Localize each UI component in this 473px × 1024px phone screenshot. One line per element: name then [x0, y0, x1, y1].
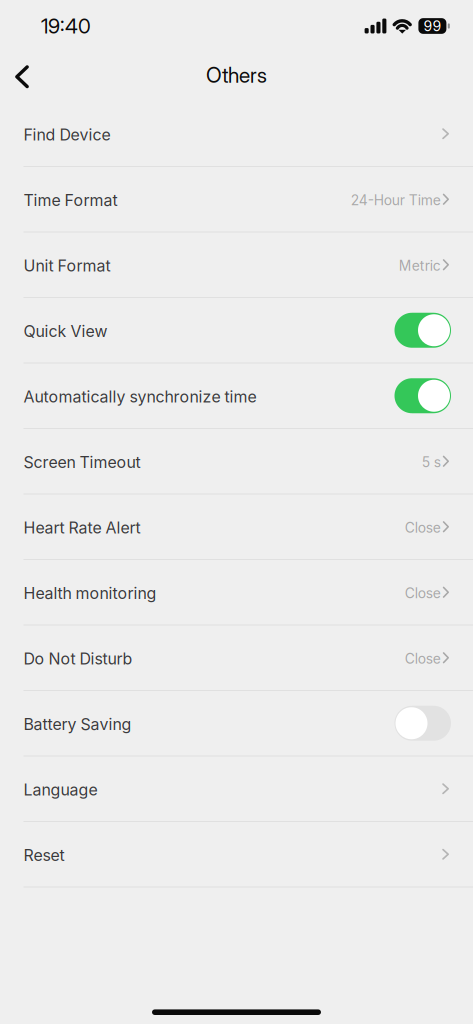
staticText: Unit Format: [23, 256, 110, 275]
staticText: Others: [206, 63, 267, 88]
button[interactable]: Battery Saving: [0, 691, 473, 756]
staticText: 19:40: [41, 13, 91, 38]
button[interactable]: Quick View: [0, 298, 473, 363]
staticText: 5 s: [422, 454, 441, 471]
staticText: Find Device: [23, 125, 110, 144]
staticText: Heart Rate Alert: [23, 518, 140, 537]
staticText: Close: [405, 585, 441, 602]
button[interactable]: Find Device: [0, 101, 473, 167]
button[interactable]: Do Not Disturb: [0, 625, 473, 691]
staticText: 99: [423, 17, 441, 34]
button[interactable]: Heart Rate Alert: [0, 494, 473, 560]
button[interactable]: Screen Timeout: [0, 429, 473, 494]
staticText: Quick View: [23, 322, 107, 341]
staticText: 24-Hour Time: [351, 192, 441, 209]
button[interactable]: Automatically synchronize time: [0, 363, 473, 429]
staticText: Close: [405, 519, 441, 536]
button[interactable]: Language: [0, 756, 473, 822]
button[interactable]: Reset: [0, 822, 473, 887]
staticText: Screen Timeout: [23, 453, 140, 472]
button[interactable]: Back: [0, 55, 44, 99]
button[interactable]: Health monitoring: [0, 560, 473, 625]
staticText: Close: [405, 650, 441, 667]
staticText: Automatically synchronize time: [23, 387, 256, 406]
staticText: Reset: [23, 846, 64, 865]
staticText: Health monitoring: [23, 584, 156, 603]
staticText: Do Not Disturb: [23, 649, 132, 668]
staticText: Battery Saving: [23, 715, 131, 734]
button[interactable]: Time Format: [0, 167, 473, 232]
staticText: Time Format: [23, 191, 117, 210]
staticText: Metric: [399, 257, 441, 274]
button[interactable]: Unit Format: [0, 232, 473, 298]
staticText: Language: [23, 780, 97, 799]
